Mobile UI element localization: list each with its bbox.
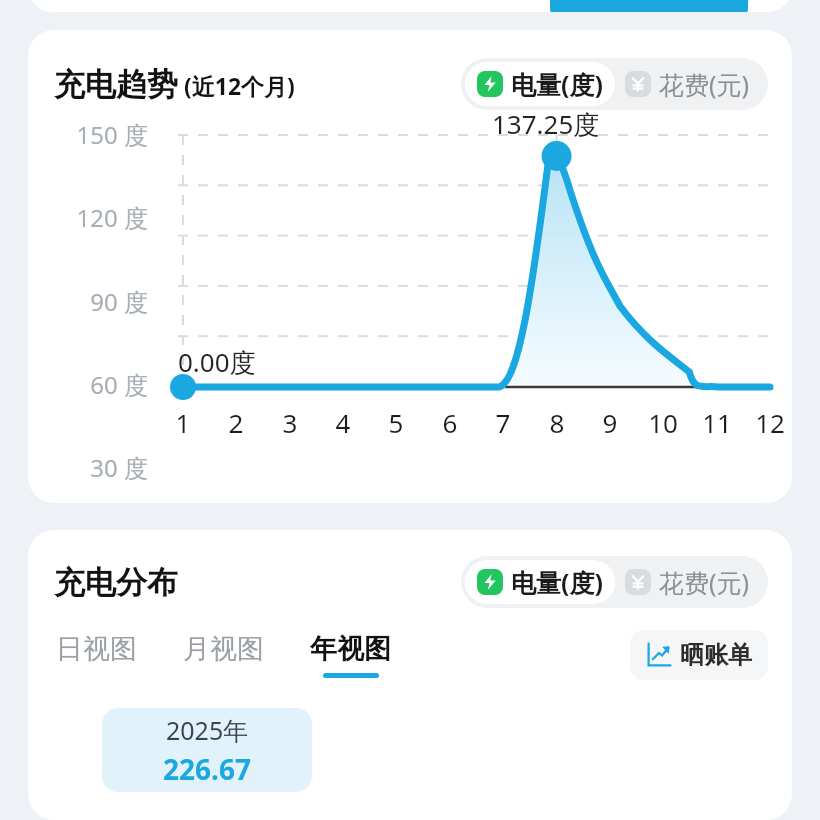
button[interactable]: 电量(度) — [465, 560, 615, 604]
staticText: 10 — [643, 405, 683, 440]
button[interactable]: 年视图 — [308, 632, 393, 678]
staticText: 3 — [270, 405, 310, 440]
staticText: (近12个月) — [184, 70, 295, 101]
button[interactable]: 月视图 — [181, 632, 266, 678]
staticText: 2 — [216, 405, 256, 440]
staticText: 4 — [323, 405, 363, 440]
staticText: 1 — [163, 405, 203, 440]
staticText: 90 度 — [28, 285, 148, 318]
other: 晒账单 — [646, 642, 672, 668]
staticText: 226.67 — [163, 750, 251, 788]
staticText: 30 度 — [28, 451, 148, 484]
staticText: 年视图 — [310, 632, 391, 666]
button[interactable] — [550, 0, 748, 12]
staticText: 晒账单 — [680, 640, 752, 670]
staticText: 充电趋势 — [54, 65, 178, 104]
staticText: 2025年 — [166, 713, 249, 747]
staticText: 充电分布 — [54, 563, 178, 602]
button[interactable]: 2025年 — [102, 708, 312, 792]
staticText: 12 — [750, 405, 790, 440]
staticText: 60 度 — [28, 368, 148, 401]
staticText: 150 度 — [28, 118, 148, 151]
button[interactable]: 电量(度) — [465, 62, 615, 106]
staticText: 0.00度 — [178, 344, 256, 380]
staticText: 日视图 — [56, 632, 137, 666]
staticText: 电量(度) — [511, 565, 603, 599]
staticText: 137.25度 — [492, 106, 600, 142]
staticText: 花费(元) — [659, 565, 750, 599]
staticText: 5 — [376, 405, 416, 440]
button[interactable]: 花费(元) — [619, 556, 768, 608]
staticText: 月视图 — [183, 632, 264, 666]
staticText: 11 — [697, 405, 737, 440]
button[interactable]: 晒账单 — [630, 630, 768, 680]
staticText: 7 — [483, 405, 523, 440]
button[interactable]: 日视图 — [54, 632, 139, 678]
staticText: 6 — [430, 405, 470, 440]
button[interactable]: 花费(元) — [619, 58, 768, 110]
staticText: 120 度 — [28, 201, 148, 234]
staticText: 电量(度) — [511, 67, 603, 101]
staticText: 8 — [537, 405, 577, 440]
staticText: 花费(元) — [659, 67, 750, 101]
staticText: 9 — [590, 405, 630, 440]
